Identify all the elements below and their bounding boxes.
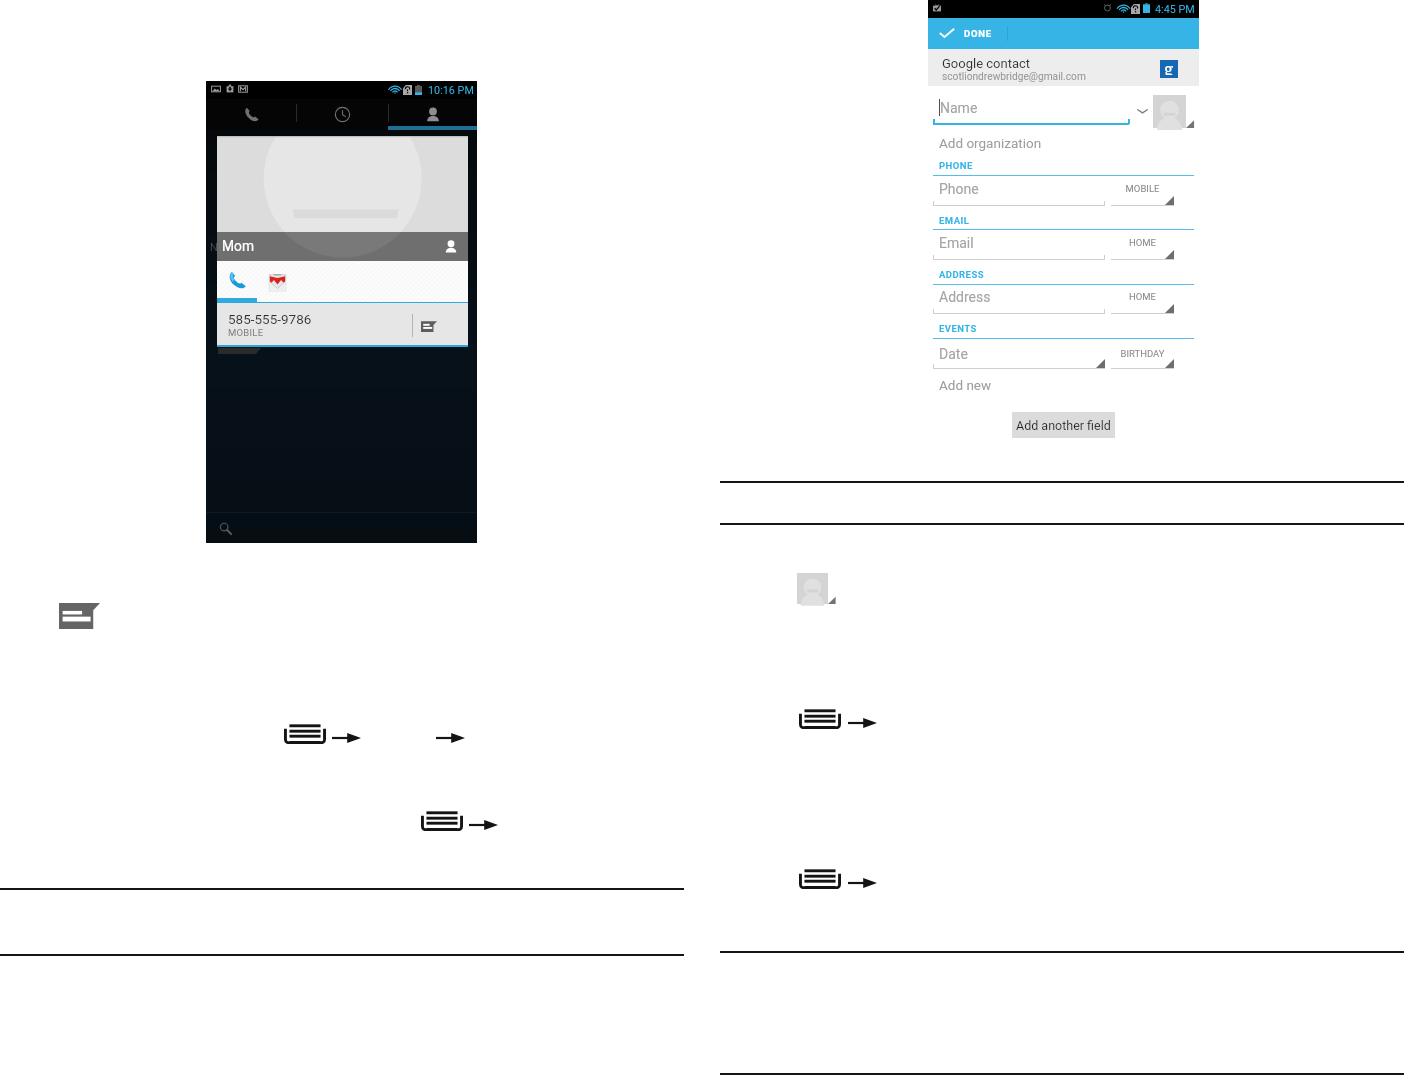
button[interactable]: BIRTHDAY	[1111, 346, 1174, 364]
staticText: Name	[940, 100, 978, 116]
staticText: Mom	[222, 238, 255, 254]
button[interactable]: Name	[933, 98, 1129, 120]
staticText: HOME	[1111, 291, 1174, 302]
staticText: HOME	[1111, 237, 1174, 248]
staticText: Add organization	[939, 135, 1042, 151]
staticText: PHONE	[939, 160, 973, 171]
staticText: 585-555-9786	[228, 311, 312, 327]
staticText: Phone	[939, 181, 979, 197]
staticText: 4:45 PM	[1155, 3, 1195, 16]
button[interactable]: Add photo	[1153, 95, 1194, 128]
button[interactable]: Add new	[933, 375, 1033, 395]
button[interactable]: Dialer	[206, 99, 296, 130]
staticText: Address	[939, 289, 991, 305]
button[interactable]: Call	[226, 269, 248, 291]
button[interactable]: Send message	[421, 320, 437, 332]
button[interactable]: Search	[219, 522, 234, 536]
staticText: g	[1164, 57, 1174, 75]
staticText: DONE	[964, 28, 992, 39]
button[interactable]: HOME	[1111, 235, 1174, 253]
button[interactable]: Date	[933, 344, 1105, 366]
staticText: Google contact	[942, 56, 1031, 71]
staticText: MOBILE	[1111, 183, 1174, 194]
button[interactable]: Contacts	[388, 99, 477, 130]
staticText: 10:16 PM	[428, 84, 474, 97]
button[interactable]: 585-555-9786	[217, 303, 468, 345]
button[interactable]: Mom	[217, 232, 468, 261]
staticText: EVENTS	[939, 323, 977, 334]
button[interactable]: Email	[266, 270, 289, 292]
staticText: EMAIL	[939, 215, 970, 226]
staticText: ADDRESS	[939, 269, 984, 280]
staticText: Add another field	[1016, 418, 1111, 433]
button[interactable]: Google contact	[928, 49, 1199, 86]
staticText: Email	[939, 235, 974, 251]
button[interactable]: DONE	[928, 18, 1199, 50]
button[interactable]: Expand name	[1134, 103, 1151, 119]
button[interactable]: Add organization	[933, 133, 1063, 153]
staticText: MOBILE	[228, 327, 264, 338]
button[interactable]: Phone	[933, 179, 1105, 201]
button[interactable]: Recents	[296, 99, 388, 130]
button[interactable]: MOBILE	[1111, 181, 1174, 199]
staticText: N	[210, 241, 218, 254]
button[interactable]: Email	[933, 233, 1105, 255]
staticText: scotliondrewbridge@gmail.com	[942, 71, 1086, 83]
button[interactable]: HOME	[1111, 289, 1174, 307]
button[interactable]: Address	[933, 287, 1105, 309]
staticText: Add new	[939, 377, 992, 393]
staticText: BIRTHDAY	[1111, 348, 1174, 359]
button[interactable]: Add another field	[1012, 412, 1115, 438]
staticText: Date	[939, 346, 968, 362]
